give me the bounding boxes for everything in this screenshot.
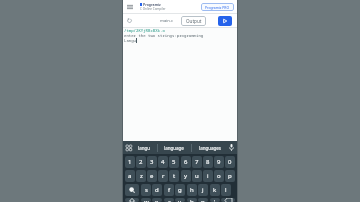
staticText: Programiz PRO [205,5,230,10]
button[interactable]: u [192,170,202,182]
staticText: ' [214,198,216,202]
staticText: p [228,172,232,180]
staticText: x [155,198,159,202]
button[interactable]: p [225,170,235,182]
button[interactable] [127,18,132,23]
button[interactable]: r [158,170,168,182]
staticText: 4 [161,158,165,166]
staticText: s [145,186,148,194]
staticText: y [184,172,188,180]
button[interactable]: v [175,198,185,202]
staticText: C Online Compiler [140,7,166,11]
staticText: 7 [195,158,199,166]
button[interactable] [221,198,235,202]
staticText: w [144,198,149,202]
staticText: 2 [139,158,143,166]
staticText: Output [186,18,202,24]
button[interactable] [126,145,132,151]
staticText: t [173,172,176,180]
staticText: j [202,186,204,194]
staticText: i [207,172,209,180]
button[interactable] [127,5,133,9]
staticText: 6 [184,158,188,166]
staticText: l [225,186,227,194]
button[interactable]: d [152,184,162,196]
button[interactable]: o [214,170,224,182]
button[interactable]: k [210,184,220,196]
staticText: o [217,172,221,180]
staticText: g [178,186,182,194]
staticText: 8 [206,158,210,166]
staticText: enter the two strings:programming [124,33,204,38]
button[interactable]: 9 [214,156,224,168]
button[interactable]: 3 [147,156,157,168]
button[interactable] [218,16,232,26]
staticText: d [155,186,159,194]
staticText: v [178,198,182,202]
staticText: Langu [124,38,136,43]
staticText: r [162,172,165,180]
button[interactable]: c [164,198,174,202]
button[interactable]: 5 [169,156,179,168]
button[interactable]: ' [210,198,220,202]
staticText: c [168,198,171,202]
staticText: 1 [128,158,132,166]
button[interactable]: t [169,170,179,182]
staticText: e [150,172,154,180]
button[interactable]: a [125,170,135,182]
staticText: Programiz [143,2,161,7]
button[interactable]: w [141,198,151,202]
button[interactable]: j [198,184,208,196]
button[interactable]: y [181,170,191,182]
button[interactable]: l [221,184,231,196]
button[interactable] [125,198,139,202]
staticText: 9 [217,158,221,166]
staticText: /tmp/2KYjRBcBXk.o [124,28,165,33]
button[interactable]: z [136,170,146,182]
staticText: a [128,172,132,180]
button[interactable]: n [198,198,208,202]
staticText: 5 [172,158,176,166]
staticText: n [201,198,205,202]
button[interactable] [125,184,139,196]
button[interactable]: x [152,198,162,202]
button[interactable]: Programiz PRO [201,3,234,11]
staticText: b [190,198,194,202]
button[interactable]: g [175,184,185,196]
button[interactable]: 7 [192,156,202,168]
staticText: k [213,186,217,194]
button[interactable]: h [187,184,197,196]
button[interactable]: Output [181,16,206,26]
button[interactable]: 1 [125,156,135,168]
button[interactable]: language [164,145,184,151]
button[interactable] [229,144,234,151]
staticText: f [168,186,171,194]
button[interactable]: s [141,184,151,196]
button[interactable]: languages [199,145,222,151]
staticText: z [140,172,143,180]
button[interactable]: e [147,170,157,182]
button[interactable]: b [187,198,197,202]
button[interactable]: f [164,184,174,196]
button[interactable]: 6 [181,156,191,168]
button[interactable]: langu [138,145,151,151]
button[interactable]: 2 [136,156,146,168]
button[interactable]: 4 [158,156,168,168]
staticText: 3 [150,158,154,166]
button[interactable]: i [203,170,213,182]
staticText: u [195,172,199,180]
staticText: h [190,186,194,194]
button[interactable]: 0 [225,156,235,168]
staticText: main.c [160,18,174,24]
staticText: 0 [228,158,232,166]
button[interactable]: 8 [203,156,213,168]
